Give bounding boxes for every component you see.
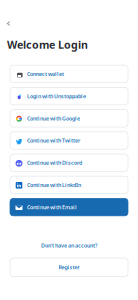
button[interactable]: Continue with LinkdIn — [10, 176, 128, 194]
staticText: Login with Unstoppable — [27, 93, 86, 100]
staticText: Continue with Twitter — [27, 137, 80, 144]
staticText: Connect wallet — [27, 70, 64, 77]
button[interactable]: Continue with Email — [10, 198, 128, 216]
button[interactable]: Connect wallet — [10, 65, 128, 83]
button[interactable]: Login with Unstoppable — [10, 87, 128, 105]
staticText: Continue with LinkdIn — [27, 181, 81, 188]
button[interactable]: Register — [10, 258, 128, 276]
button[interactable]: Continue with Google — [10, 110, 128, 127]
staticText: Continue with Email — [27, 204, 77, 211]
staticText: Don't have an account? — [41, 242, 97, 249]
staticText: Continue with Google — [27, 115, 80, 122]
button[interactable]: Continue with Discord — [10, 154, 128, 171]
staticText: Register — [58, 264, 79, 271]
button[interactable]: Back — [3, 18, 14, 29]
staticText: Continue with Discord — [27, 159, 82, 166]
staticText: Welcome Login — [7, 37, 88, 52]
button[interactable]: Continue with Twitter — [10, 132, 128, 149]
